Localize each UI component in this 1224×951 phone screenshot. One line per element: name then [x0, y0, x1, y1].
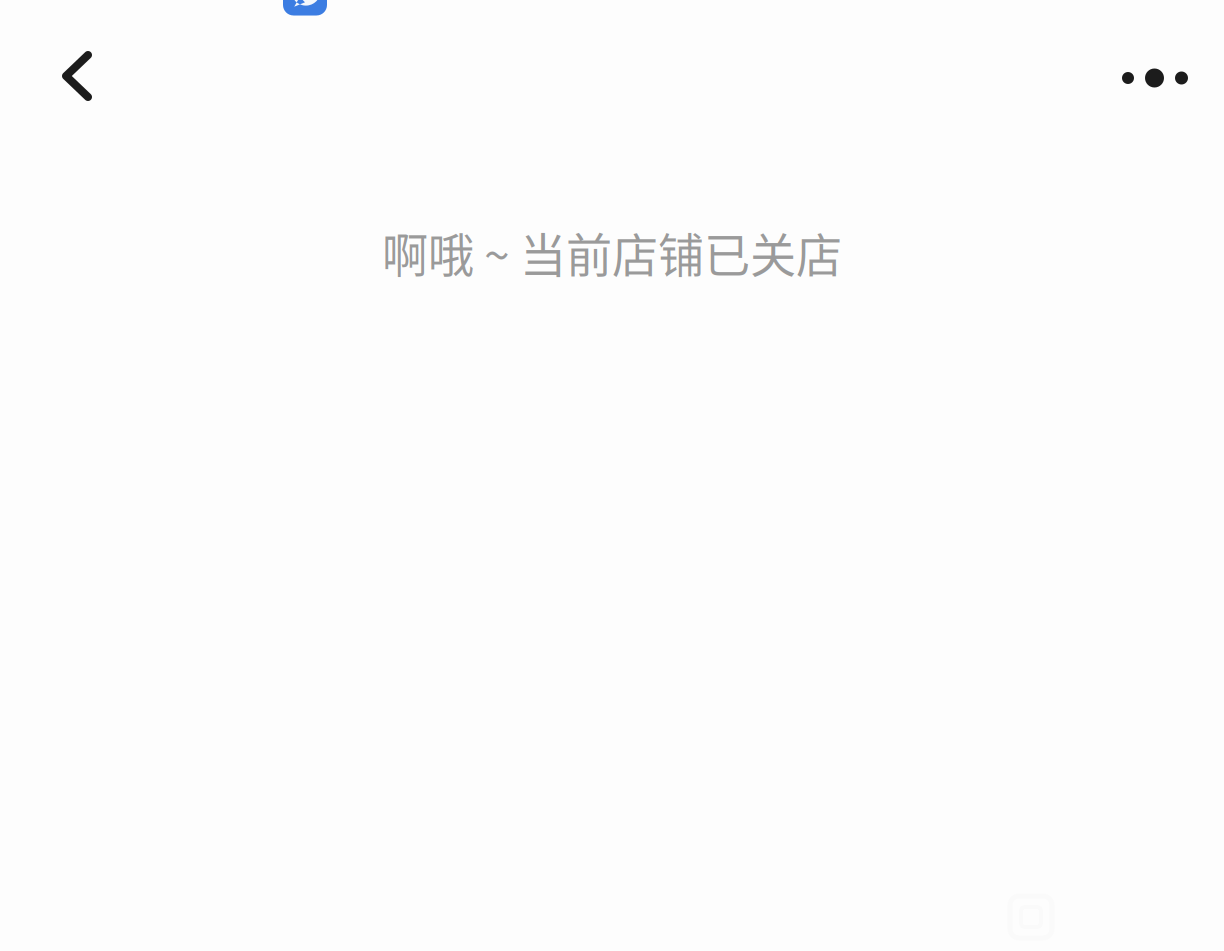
staticText: 啊哦 ~ 当前店铺已关店	[382, 219, 842, 286]
button[interactable]: More options	[1104, 40, 1206, 116]
button[interactable]: Back	[40, 38, 114, 114]
